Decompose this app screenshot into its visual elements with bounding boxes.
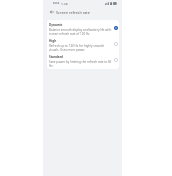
- button[interactable]: High: [47, 36, 119, 52]
- staticText: High: [49, 39, 57, 43]
- staticText: 1:48: [61, 2, 68, 5]
- button[interactable]: Dynamic: [47, 20, 119, 36]
- button[interactable]: Back: [48, 8, 56, 16]
- staticText: Refresh up to 120 Hz for highly smooth v…: [49, 44, 105, 52]
- staticText: Standard: [49, 55, 63, 59]
- staticText: Save power by limiting the refresh rate …: [49, 60, 112, 68]
- staticText: Balance smooth display and battery life …: [49, 28, 112, 36]
- staticText: Screen refresh rate: [56, 10, 90, 15]
- button[interactable]: Standard: [47, 52, 119, 68]
- staticText: Dynamic: [49, 23, 63, 27]
